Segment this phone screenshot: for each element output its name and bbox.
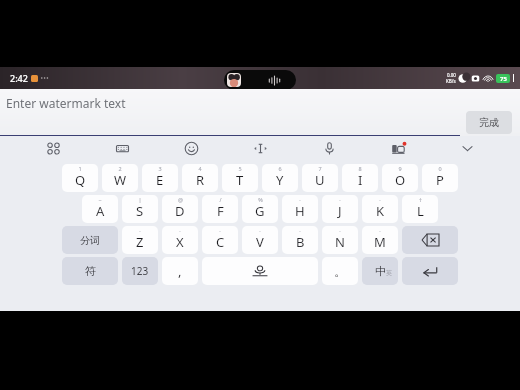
staticText: 5 bbox=[238, 165, 242, 172]
staticText: 中 bbox=[375, 264, 386, 278]
staticText: N bbox=[335, 233, 345, 251]
staticText: 9 bbox=[398, 165, 402, 172]
staticText: · bbox=[339, 227, 341, 234]
staticText: I bbox=[358, 171, 363, 189]
button[interactable]: 中 bbox=[362, 257, 398, 285]
button[interactable]: · bbox=[162, 226, 198, 254]
staticText: U bbox=[315, 171, 325, 189]
button[interactable]: Collapse bbox=[433, 136, 502, 160]
button[interactable]: 3 bbox=[142, 164, 178, 192]
staticText: 分词 bbox=[80, 234, 100, 247]
button[interactable]: 8 bbox=[342, 164, 378, 192]
button[interactable]: Backspace bbox=[402, 226, 458, 254]
staticText: † bbox=[419, 196, 422, 203]
button[interactable]: · bbox=[362, 226, 398, 254]
staticText: K bbox=[376, 202, 385, 220]
staticText: · bbox=[379, 227, 381, 234]
staticText: L bbox=[417, 202, 424, 220]
button[interactable]: Emoji bbox=[157, 136, 226, 160]
staticText: 0 bbox=[438, 165, 442, 172]
staticText: B bbox=[296, 233, 305, 251]
staticText: 4 bbox=[198, 165, 202, 172]
staticText: P bbox=[436, 171, 444, 189]
staticText: 6 bbox=[278, 165, 282, 172]
staticText: 0.00 bbox=[447, 72, 456, 78]
button[interactable]: † bbox=[402, 195, 438, 223]
staticText: M bbox=[374, 233, 386, 251]
button[interactable]: Keyboard bbox=[88, 136, 157, 160]
staticText: D bbox=[175, 202, 185, 220]
button[interactable]: Apps bbox=[18, 136, 88, 160]
staticText: · bbox=[179, 227, 181, 234]
staticText: 123 bbox=[131, 264, 149, 278]
staticText: H bbox=[295, 202, 305, 220]
staticText: 2 bbox=[118, 165, 122, 172]
button[interactable]: Voice input bbox=[295, 136, 364, 160]
button[interactable]: % bbox=[242, 195, 278, 223]
button[interactable]: 完成 bbox=[466, 111, 512, 134]
staticText: · bbox=[339, 196, 341, 203]
button[interactable]: @ bbox=[162, 195, 198, 223]
staticText: · bbox=[139, 227, 141, 234]
staticText: Enter watermark text bbox=[6, 95, 126, 111]
button[interactable]: 123 bbox=[122, 257, 158, 285]
button[interactable]: , bbox=[162, 257, 198, 285]
staticText: Z bbox=[136, 233, 144, 251]
staticText: C bbox=[216, 233, 225, 251]
staticText: 1 bbox=[78, 165, 82, 172]
button[interactable]: 5 bbox=[222, 164, 258, 192]
staticText: O bbox=[395, 171, 406, 189]
staticText: V bbox=[256, 233, 264, 251]
button[interactable]: · bbox=[282, 195, 318, 223]
staticText: | bbox=[138, 196, 142, 203]
staticText: G bbox=[255, 202, 265, 220]
staticText: F bbox=[217, 202, 224, 220]
staticText: J bbox=[338, 202, 342, 220]
staticText: Q bbox=[75, 171, 86, 189]
staticText: A bbox=[96, 202, 105, 220]
button[interactable]: · bbox=[202, 226, 238, 254]
staticText: KB/s bbox=[446, 78, 456, 84]
button[interactable]: 2 bbox=[102, 164, 138, 192]
staticText: T bbox=[236, 171, 244, 189]
staticText: Y bbox=[276, 171, 284, 189]
button[interactable]: ~ bbox=[82, 195, 118, 223]
button[interactable]: · bbox=[322, 195, 358, 223]
button[interactable]: · bbox=[362, 195, 398, 223]
staticText: 8 bbox=[358, 165, 362, 172]
button[interactable]: | bbox=[122, 195, 158, 223]
staticText: S bbox=[136, 202, 144, 220]
button[interactable]: Enter watermark text bbox=[0, 89, 520, 136]
button[interactable]: 分词 bbox=[62, 226, 118, 254]
staticText: E bbox=[156, 171, 164, 189]
staticText: · bbox=[219, 227, 221, 234]
button[interactable]: Text edit bbox=[226, 136, 295, 160]
button[interactable]: Translate bbox=[364, 136, 433, 160]
staticText: 7 bbox=[318, 165, 322, 172]
staticText: 英 bbox=[386, 269, 392, 277]
button[interactable]: · bbox=[322, 226, 358, 254]
staticText: R bbox=[196, 171, 205, 189]
button[interactable]: 符 bbox=[62, 257, 118, 285]
staticText: , bbox=[178, 262, 182, 280]
button[interactable]: · bbox=[242, 226, 278, 254]
button[interactable]: 6 bbox=[262, 164, 298, 192]
button[interactable]: Enter bbox=[402, 257, 458, 285]
staticText: 完成 bbox=[479, 116, 499, 129]
staticText: · bbox=[259, 227, 261, 234]
button[interactable]: 。 bbox=[322, 257, 358, 285]
staticText: 。 bbox=[334, 263, 347, 279]
button[interactable]: · bbox=[122, 226, 158, 254]
button[interactable]: 0 bbox=[422, 164, 458, 192]
button[interactable]: 4 bbox=[182, 164, 218, 192]
staticText: % bbox=[258, 196, 263, 203]
button[interactable]: · bbox=[282, 226, 318, 254]
staticText: / bbox=[219, 196, 222, 203]
button[interactable]: 7 bbox=[302, 164, 338, 192]
button[interactable]: 1 bbox=[62, 164, 98, 192]
staticText: · bbox=[379, 196, 381, 203]
staticText: · bbox=[299, 227, 301, 234]
button[interactable]: 9 bbox=[382, 164, 418, 192]
button[interactable]: / bbox=[202, 195, 238, 223]
button[interactable]: Space bbox=[202, 257, 318, 285]
